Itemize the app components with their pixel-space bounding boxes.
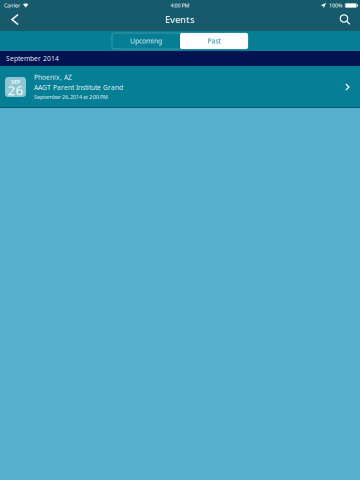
button[interactable]: Upcoming [112,33,180,49]
staticText: Phoenix, AZ [34,73,72,81]
staticText: Past [207,37,220,45]
staticText: September 26, 2014 at 2:00 PM [34,93,108,101]
staticText: Events [165,13,195,26]
button[interactable]: SEP [0,66,360,108]
button[interactable]: Past [180,33,248,49]
button[interactable]: Search [330,10,360,29]
staticText: Carrier [4,2,20,9]
staticText: 26 [7,81,23,99]
button[interactable]: Back [0,10,30,29]
staticText: 100% [329,2,343,9]
staticText: Upcoming [130,37,162,45]
staticText: SEP [11,78,20,86]
staticText: 4:00 PM [170,2,189,9]
staticText: September 2014 [6,54,59,63]
staticText: AAGT Parent Institute Grand [34,83,123,92]
